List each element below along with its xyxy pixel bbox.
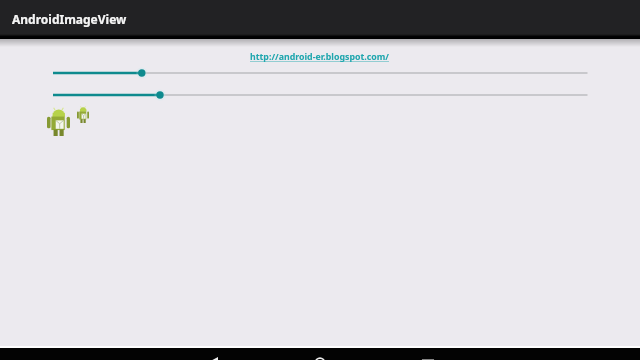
button[interactable]: Back — [203, 348, 225, 360]
button[interactable] — [0, 65, 640, 81]
staticText: AndroidImageView — [12, 11, 127, 27]
button[interactable]: http://android-er.blogspot.com/ — [250, 51, 390, 63]
button[interactable]: Recents — [417, 348, 439, 360]
button[interactable]: AndroidImageView — [0, 0, 640, 38]
button[interactable]: Home — [309, 348, 331, 360]
button[interactable] — [0, 87, 640, 103]
